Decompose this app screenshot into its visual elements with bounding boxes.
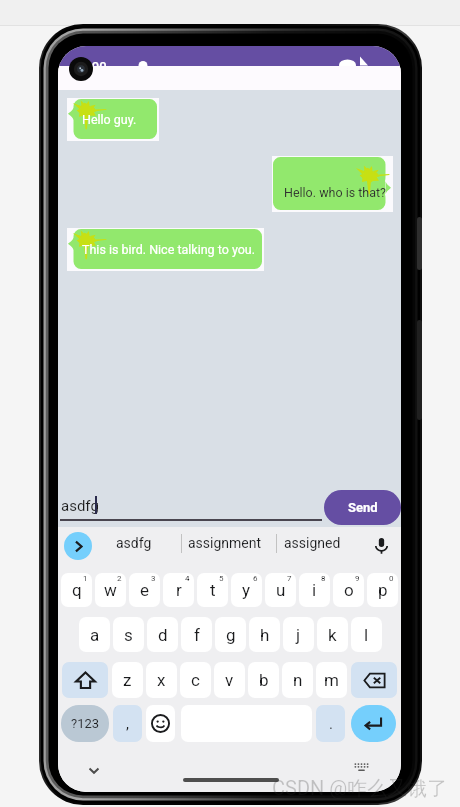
other: Front camera (69, 57, 93, 81)
button[interactable]: Comma (113, 705, 142, 742)
button[interactable]: v (214, 662, 245, 698)
button[interactable]: e (129, 573, 160, 607)
staticText: 7 (287, 574, 292, 583)
button[interactable]: n (282, 662, 313, 698)
staticText: w (104, 580, 117, 600)
staticText: asdfg (61, 497, 99, 515)
button[interactable]: asdfg (116, 535, 152, 551)
button[interactable]: d (147, 617, 178, 652)
button[interactable]: f (181, 617, 212, 652)
button[interactable]: Shift (62, 662, 108, 698)
button[interactable]: p (367, 573, 398, 607)
staticText: x (157, 670, 166, 690)
button[interactable]: o (333, 573, 364, 607)
staticText: d (158, 625, 168, 645)
staticText: ?123 (71, 716, 100, 731)
button[interactable]: c (180, 662, 211, 698)
staticText: Hello guy. (82, 112, 137, 127)
staticText: p (378, 580, 388, 600)
button[interactable]: More suggestions (64, 532, 92, 560)
button[interactable]: i (299, 573, 330, 607)
button[interactable]: Emoji (146, 705, 175, 742)
staticText: CSDN @咋么又饿了 (272, 776, 448, 801)
staticText: n (293, 670, 303, 690)
staticText: a (90, 625, 100, 645)
staticText: 3 (151, 574, 156, 583)
button[interactable]: q (61, 573, 92, 607)
staticText: j (296, 625, 301, 645)
staticText: 8 (321, 574, 326, 583)
button[interactable]: assigned (284, 535, 341, 551)
staticText: q (72, 580, 82, 600)
staticText: 0 (389, 574, 394, 583)
button[interactable]: Enter (351, 705, 396, 742)
button[interactable]: This is bird. Nice talking to you. (68, 229, 262, 269)
button[interactable]: b (248, 662, 279, 698)
staticText: Send (348, 500, 378, 515)
button[interactable]: s (113, 617, 144, 652)
staticText: h (260, 625, 270, 645)
button[interactable]: x (146, 662, 177, 698)
staticText: i (312, 580, 317, 600)
staticText: , (126, 715, 129, 733)
button[interactable]: z (112, 662, 143, 698)
staticText: g (226, 625, 236, 645)
button[interactable]: l (351, 617, 382, 652)
button[interactable]: assignment (188, 535, 262, 551)
button[interactable]: r (163, 573, 194, 607)
button[interactable]: Backspace (351, 662, 397, 698)
staticText: v (225, 670, 234, 690)
staticText: u (276, 580, 286, 600)
button[interactable]: Switch input method (349, 755, 373, 779)
button[interactable]: asdfg (60, 489, 324, 525)
staticText: 6 (253, 574, 258, 583)
staticText: Hello. who is that? (284, 185, 387, 200)
staticText: This is bird. Nice talking to you. (82, 242, 256, 257)
button[interactable]: Period (316, 705, 345, 742)
staticText: t (210, 580, 216, 600)
button[interactable]: Hello. who is that? (273, 157, 391, 210)
staticText: k (328, 625, 337, 645)
button[interactable]: h (249, 617, 280, 652)
button[interactable]: g (215, 617, 246, 652)
staticText: c (191, 670, 200, 690)
button[interactable]: Hello guy. (68, 99, 157, 139)
staticText: 4 (185, 574, 190, 583)
staticText: l (364, 625, 369, 645)
button[interactable]: Hide keyboard (82, 758, 106, 782)
staticText: o (344, 580, 354, 600)
staticText: 1 (83, 574, 88, 583)
staticText: s (124, 625, 133, 645)
staticText: e (140, 580, 150, 600)
staticText: b (259, 670, 269, 690)
button[interactable]: j (283, 617, 314, 652)
button[interactable]: k (317, 617, 348, 652)
staticText: 5 (219, 574, 224, 583)
staticText: 7:00 (81, 59, 107, 66)
staticText: f (194, 625, 200, 645)
staticText: . (329, 715, 333, 733)
button[interactable]: t (197, 573, 228, 607)
button[interactable]: a (79, 617, 110, 652)
button[interactable]: u (265, 573, 296, 607)
staticText: 9 (355, 574, 360, 583)
staticText: 2 (117, 574, 122, 583)
button[interactable]: y (231, 573, 262, 607)
staticText: z (123, 670, 132, 690)
button[interactable]: Symbols (61, 705, 109, 742)
button[interactable]: w (95, 573, 126, 607)
staticText: r (176, 580, 182, 600)
button[interactable]: Send (324, 490, 401, 525)
staticText: y (242, 580, 251, 600)
staticText: m (324, 670, 339, 690)
button[interactable]: m (316, 662, 347, 698)
button[interactable]: Voice input (367, 531, 395, 559)
